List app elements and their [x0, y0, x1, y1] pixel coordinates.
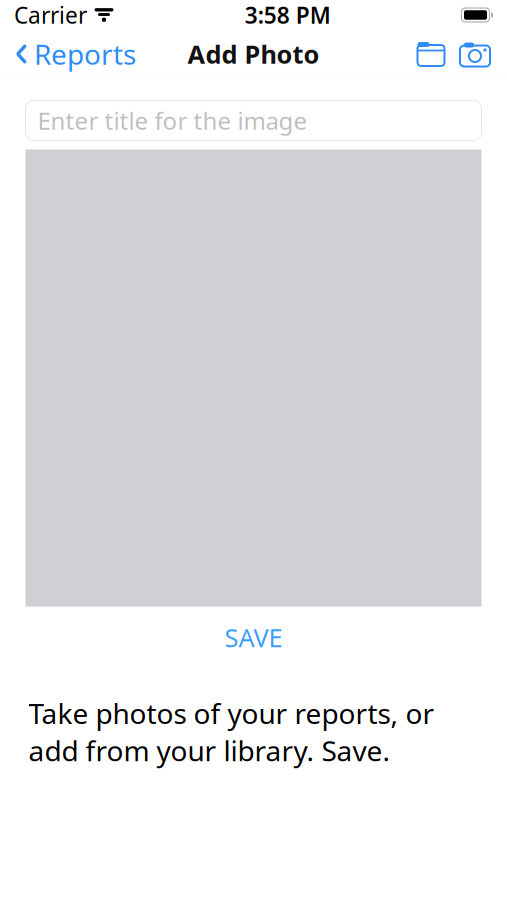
button[interactable]: SAVE: [25, 612, 481, 662]
staticText: Add Photo: [187, 37, 319, 71]
staticText: SAVE: [224, 621, 282, 654]
staticText: Carrier: [14, 0, 87, 30]
staticText: Take photos of your reports, or add from…: [28, 694, 434, 769]
button[interactable]: Reports: [0, 29, 136, 79]
staticText: Reports: [34, 35, 136, 73]
button[interactable]: Take photo: [453, 35, 497, 73]
staticText: Enter title for the image: [37, 105, 307, 136]
button[interactable]: Choose from library: [409, 35, 453, 73]
staticText: 3:58 PM: [245, 0, 331, 30]
